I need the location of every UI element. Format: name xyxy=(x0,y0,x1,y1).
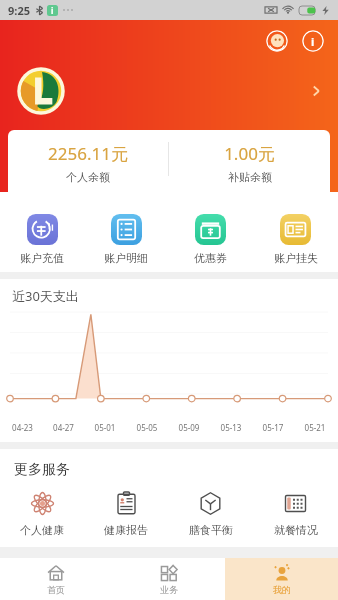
staticText: 账户挂失 xyxy=(274,251,318,265)
button[interactable]: 首页 xyxy=(0,558,112,600)
staticText: 05-13 xyxy=(210,422,252,433)
staticText: 04-23 xyxy=(2,422,43,433)
staticText: 优惠券 xyxy=(194,251,227,265)
staticText: 个人余额 xyxy=(66,170,110,184)
staticText: 账户充值 xyxy=(20,251,64,265)
staticText: 近30天支出 xyxy=(12,287,79,305)
button[interactable]: 业务 xyxy=(112,558,225,600)
staticText: 05-09 xyxy=(168,422,210,433)
staticText: 个人健康 xyxy=(20,523,64,537)
button[interactable]: 1.00元 xyxy=(169,142,330,184)
staticText: 膳食平衡 xyxy=(189,523,233,537)
staticText: i xyxy=(51,5,54,16)
button[interactable]: 账户充值 xyxy=(0,214,84,265)
staticText: 补贴余额 xyxy=(228,170,272,184)
button[interactable]: 我的 xyxy=(225,558,338,600)
staticText: 2256.11元 xyxy=(48,142,128,165)
staticText: 9:25 xyxy=(8,3,30,18)
staticText: 首页 xyxy=(47,584,65,595)
staticText: 05-01 xyxy=(84,422,126,433)
button[interactable]: 健康报告 xyxy=(84,491,168,537)
staticText: 更多服务 xyxy=(14,461,70,479)
button[interactable]: 就餐情况 xyxy=(253,491,338,537)
staticText: 就餐情况 xyxy=(274,523,318,537)
staticText: 1.00元 xyxy=(224,142,275,165)
button[interactable]: 2256.11元 xyxy=(8,142,168,184)
staticText: 账户明细 xyxy=(104,251,148,265)
button[interactable]: 账户挂失 xyxy=(253,214,338,265)
staticText: 业务 xyxy=(160,584,178,595)
button[interactable]: Information xyxy=(302,30,324,52)
staticText: 健康报告 xyxy=(104,523,148,537)
staticText: 05-21 xyxy=(294,422,336,433)
staticText: 04-27 xyxy=(43,422,84,433)
staticText: 我的 xyxy=(273,584,291,595)
button[interactable]: 膳食平衡 xyxy=(168,491,253,537)
button[interactable]: 账户明细 xyxy=(84,214,168,265)
button[interactable]: 优惠券 xyxy=(168,214,253,265)
button[interactable]: 个人健康 xyxy=(0,491,84,537)
staticText: i xyxy=(311,34,315,49)
button[interactable]: Customer service xyxy=(266,30,288,52)
staticText: 05-17 xyxy=(252,422,294,433)
staticText: 05-05 xyxy=(126,422,168,433)
button[interactable] xyxy=(14,64,324,118)
